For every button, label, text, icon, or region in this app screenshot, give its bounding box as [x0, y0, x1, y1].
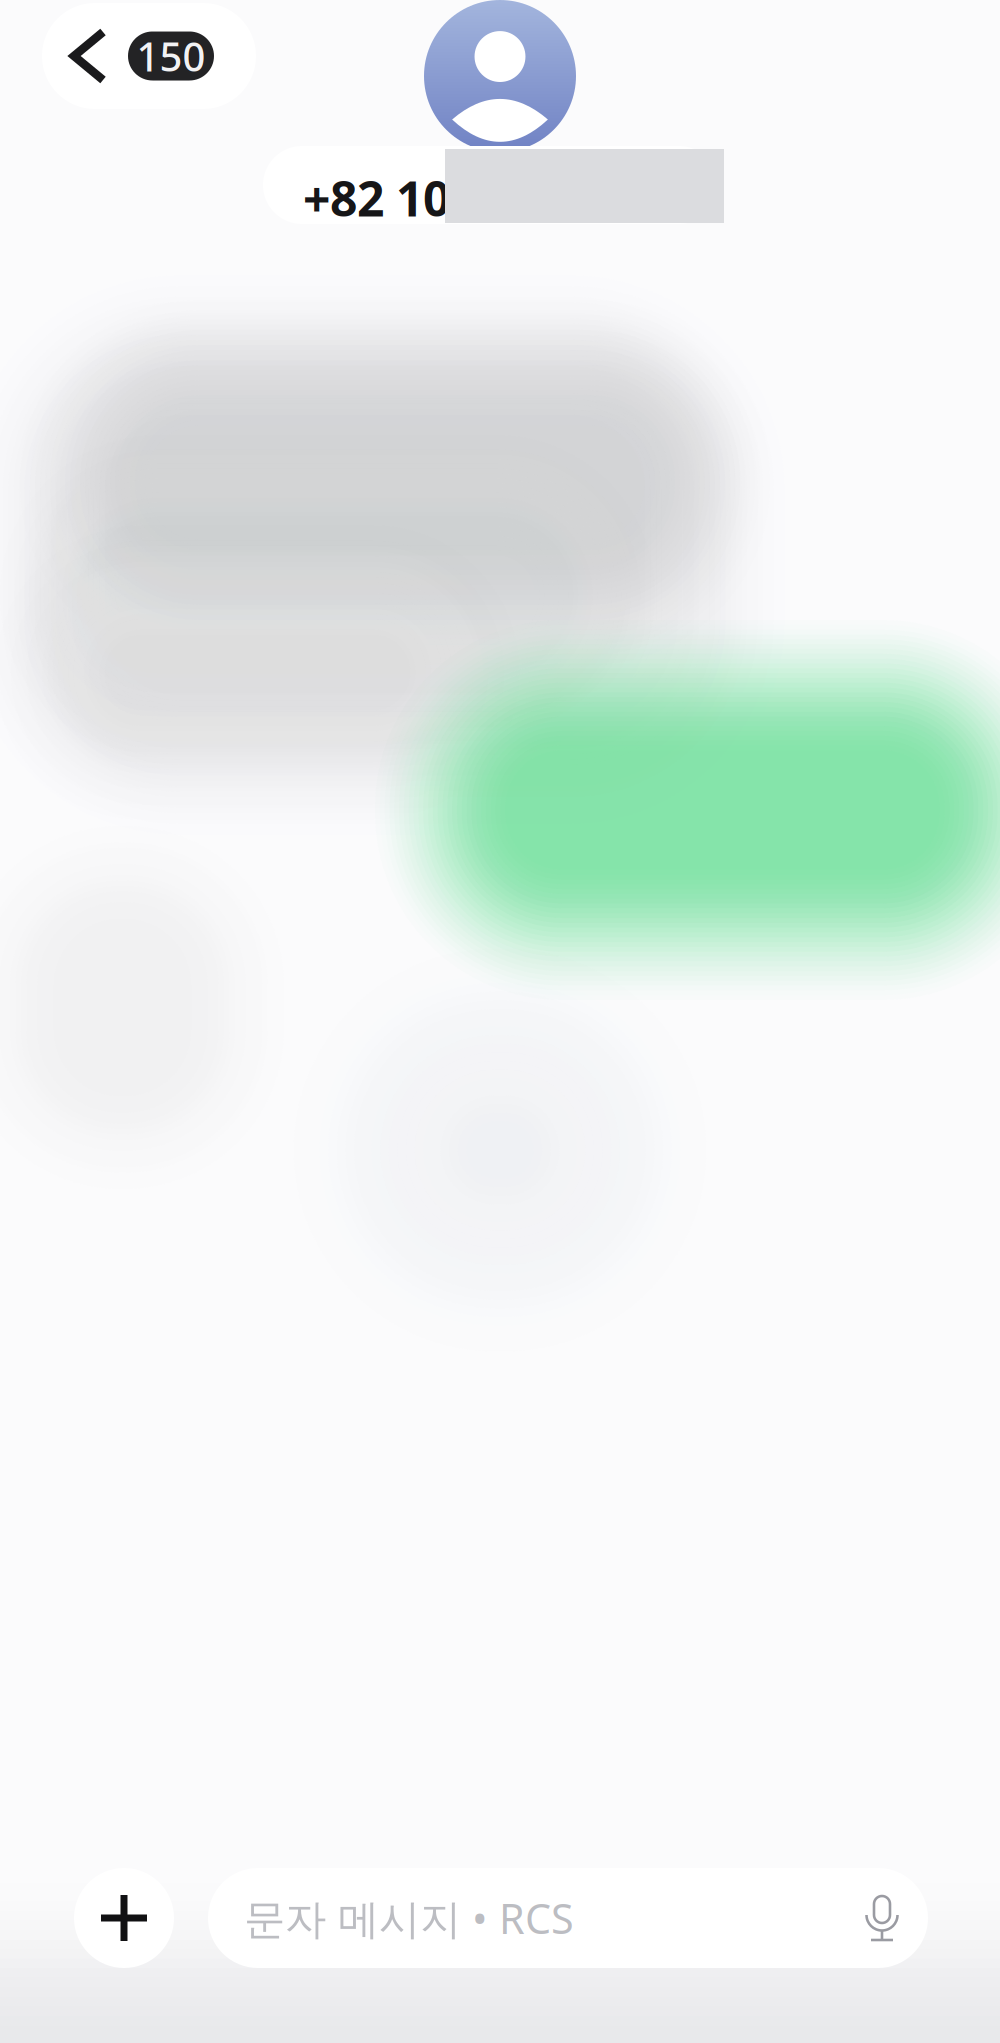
button[interactable]: 150 [42, 3, 256, 109]
button[interactable]: 문자 메시지 • RCS [208, 1868, 928, 1968]
staticText: 문자 메시지 • RCS [244, 1891, 574, 1945]
staticText: 150 [136, 29, 205, 82]
button[interactable]: Add attachment [74, 1868, 174, 1968]
button[interactable]: Voice input [836, 1869, 928, 1969]
staticText: +82 10 [303, 166, 450, 230]
